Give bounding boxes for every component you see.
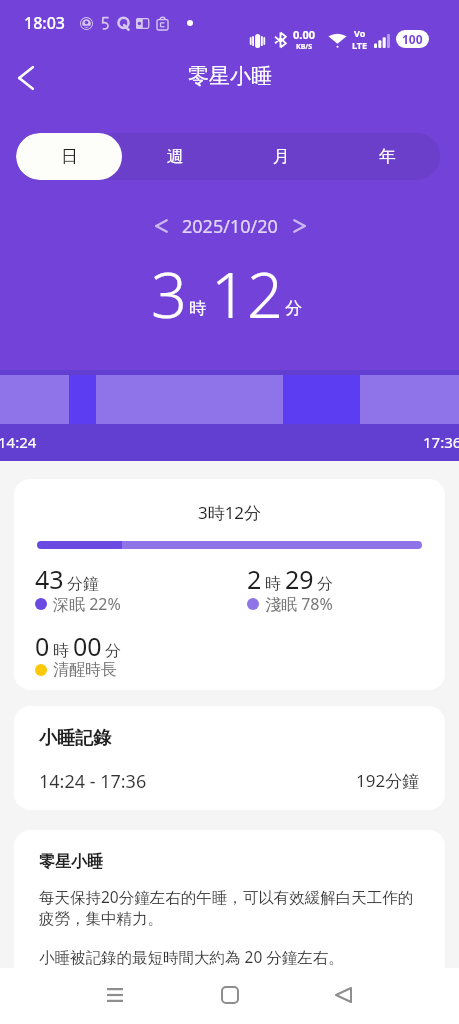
button[interactable]: Recent apps	[93, 973, 137, 1017]
staticText: 小睡記錄	[39, 727, 111, 750]
staticText: 淺眠 78%	[265, 593, 333, 615]
staticText: 年	[379, 146, 396, 167]
staticText: 14:24	[0, 432, 37, 452]
staticText: 清醒時長	[53, 660, 117, 680]
staticText: 12	[211, 251, 283, 321]
staticText: 分	[317, 574, 333, 594]
staticText: LTE	[352, 39, 368, 51]
staticText: 2025/10/20	[182, 214, 278, 239]
staticText: Vo	[354, 27, 366, 39]
button[interactable]: 週	[122, 133, 228, 180]
staticText: 月	[273, 146, 290, 167]
staticText: 週	[167, 146, 184, 167]
staticText: 100	[402, 31, 423, 47]
staticText: 小睡被記錄的最短時間大約為 20 分鐘左右。	[39, 946, 417, 967]
staticText: 分鐘	[67, 574, 99, 594]
staticText: 43	[35, 562, 64, 596]
staticText: 時	[189, 298, 206, 319]
button[interactable]: 月	[228, 133, 334, 180]
staticText: 深眠 22%	[53, 593, 121, 615]
staticText: KB/S	[296, 42, 313, 52]
staticText: 分	[105, 641, 121, 661]
button[interactable]: Next day	[283, 210, 315, 242]
staticText: 分	[285, 298, 302, 319]
button[interactable]: Back	[3, 55, 49, 101]
staticText: 日	[61, 146, 78, 167]
button[interactable]: Back	[321, 973, 365, 1017]
staticText: 14:24 - 17:36	[39, 769, 147, 794]
staticText: 2	[247, 562, 262, 596]
staticText: 每天保持20分鐘左右的午睡，可以有效緩解白天工作的疲勞，集中精力。	[39, 886, 417, 929]
staticText: 3時12分	[14, 501, 445, 524]
staticText: 3	[151, 251, 187, 321]
staticText: 0	[35, 629, 50, 663]
staticText: 18:03	[24, 12, 65, 34]
staticText: 0.00	[293, 27, 315, 42]
button[interactable]: Home	[208, 973, 252, 1017]
staticText: 時	[265, 574, 281, 594]
staticText: 時	[53, 641, 69, 661]
button[interactable]: Previous day	[145, 210, 177, 242]
staticText: 零星小睡	[39, 852, 103, 872]
staticText: 17:36	[423, 432, 459, 452]
button[interactable]: 日	[16, 133, 122, 180]
staticText: 00	[73, 629, 102, 663]
staticText: 29	[285, 562, 314, 596]
button[interactable]: 年	[334, 133, 440, 180]
staticText: 零星小睡	[188, 63, 272, 89]
staticText: 192分鐘	[356, 769, 420, 792]
